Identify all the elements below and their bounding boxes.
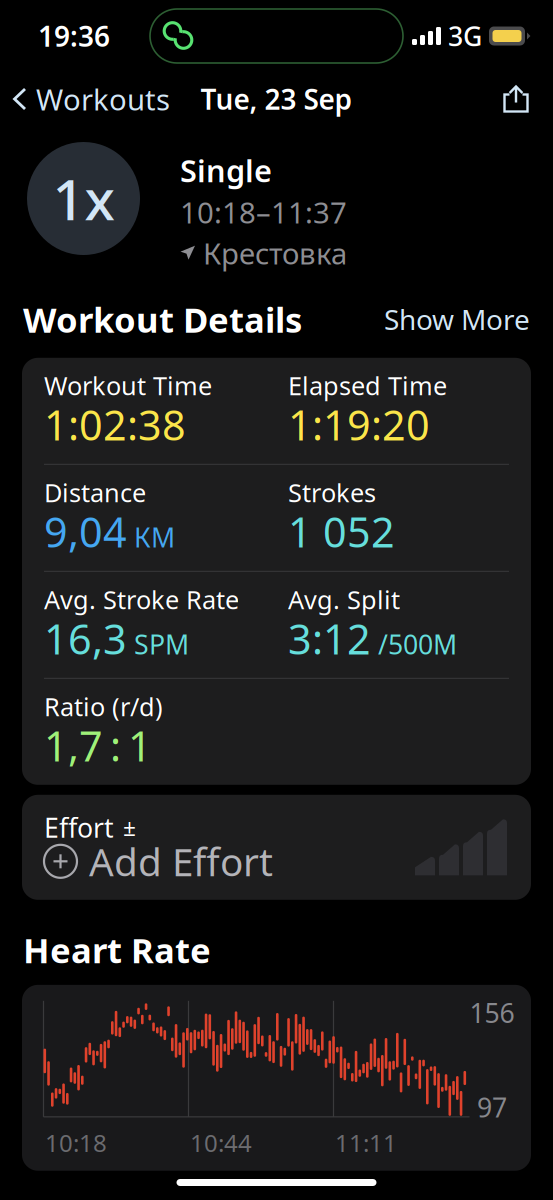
staticText: 11:11 [335, 1127, 397, 1159]
staticText: 10:18–11:37 [180, 193, 347, 232]
staticText: 3G [448, 18, 482, 54]
staticText: Distance [44, 475, 146, 509]
button[interactable]: Effort [22, 795, 531, 900]
staticText: Крестовка [203, 234, 347, 273]
staticText: Heart Rate [23, 927, 211, 973]
staticText: Avg. Split [288, 582, 400, 616]
staticText: 3:12 [288, 611, 371, 666]
staticText: Single [180, 150, 272, 191]
staticText: 9,04 [44, 504, 127, 559]
staticText: 1,7 : 1 [44, 718, 152, 773]
staticText: Workouts [36, 79, 170, 118]
staticText: /500M [378, 626, 457, 662]
staticText: SPM [134, 626, 189, 662]
staticText: Tue, 23 Sep [200, 80, 352, 118]
button[interactable]: Workouts [0, 71, 170, 126]
staticText: Strokes [288, 475, 376, 509]
staticText: Elapsed Time [288, 368, 447, 402]
button[interactable]: Show More [384, 295, 553, 344]
staticText: Add Effort [89, 836, 273, 887]
staticText: КМ [134, 519, 175, 555]
staticText: ± [123, 812, 136, 842]
staticText: Effort [44, 810, 114, 845]
staticText: 16,3 [44, 611, 127, 666]
staticText: 156 [469, 995, 514, 1030]
staticText: Workout Details [23, 296, 302, 342]
staticText: 10:44 [190, 1127, 252, 1159]
staticText: Ratio (r/d) [44, 689, 163, 723]
staticText: 1 052 [288, 504, 395, 559]
staticText: 1:19:20 [288, 397, 430, 452]
staticText: Show More [384, 301, 530, 338]
staticText: 97 [477, 1089, 507, 1125]
staticText: 19:36 [38, 17, 110, 55]
staticText: 10:18 [45, 1127, 107, 1159]
staticText: Avg. Stroke Rate [44, 582, 239, 616]
staticText: 1:02:38 [44, 397, 186, 452]
staticText: Workout Time [44, 368, 212, 402]
staticText: 1x [52, 161, 114, 236]
button[interactable]: Share [489, 78, 553, 120]
